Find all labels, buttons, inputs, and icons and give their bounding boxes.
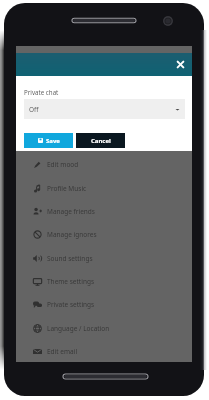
- staticText: Theme settings: [47, 277, 95, 286]
- button[interactable]: Edit mood: [16, 153, 192, 176]
- button[interactable]: Cancel: [76, 133, 125, 148]
- button[interactable]: Manage friends: [16, 200, 192, 223]
- staticText: Private settings: [47, 300, 95, 309]
- button[interactable]: Manage ignores: [16, 223, 192, 246]
- staticText: Private chat: [24, 88, 59, 96]
- button[interactable]: Edit email: [16, 340, 192, 363]
- button[interactable]: Language / Location: [16, 317, 192, 340]
- staticText: Edit mood: [47, 160, 79, 169]
- button[interactable]: Close dialog: [175, 59, 186, 70]
- staticText: Save: [46, 137, 60, 145]
- button[interactable]: Save: [24, 133, 73, 148]
- staticText: Language / Location: [47, 324, 110, 333]
- staticText: Manage friends: [47, 207, 95, 216]
- button[interactable]: Off: [24, 99, 185, 119]
- staticText: Sound settings: [47, 254, 93, 263]
- staticText: Manage ignores: [47, 230, 97, 239]
- button[interactable]: Private settings: [16, 293, 192, 316]
- staticText: Profile Music: [47, 184, 87, 193]
- button[interactable]: Theme settings: [16, 270, 192, 293]
- staticText: Off: [29, 105, 39, 114]
- button[interactable]: Sound settings: [16, 247, 192, 270]
- button[interactable]: Profile Music: [16, 177, 192, 200]
- staticText: Edit email: [47, 347, 78, 356]
- staticText: Cancel: [91, 137, 111, 145]
